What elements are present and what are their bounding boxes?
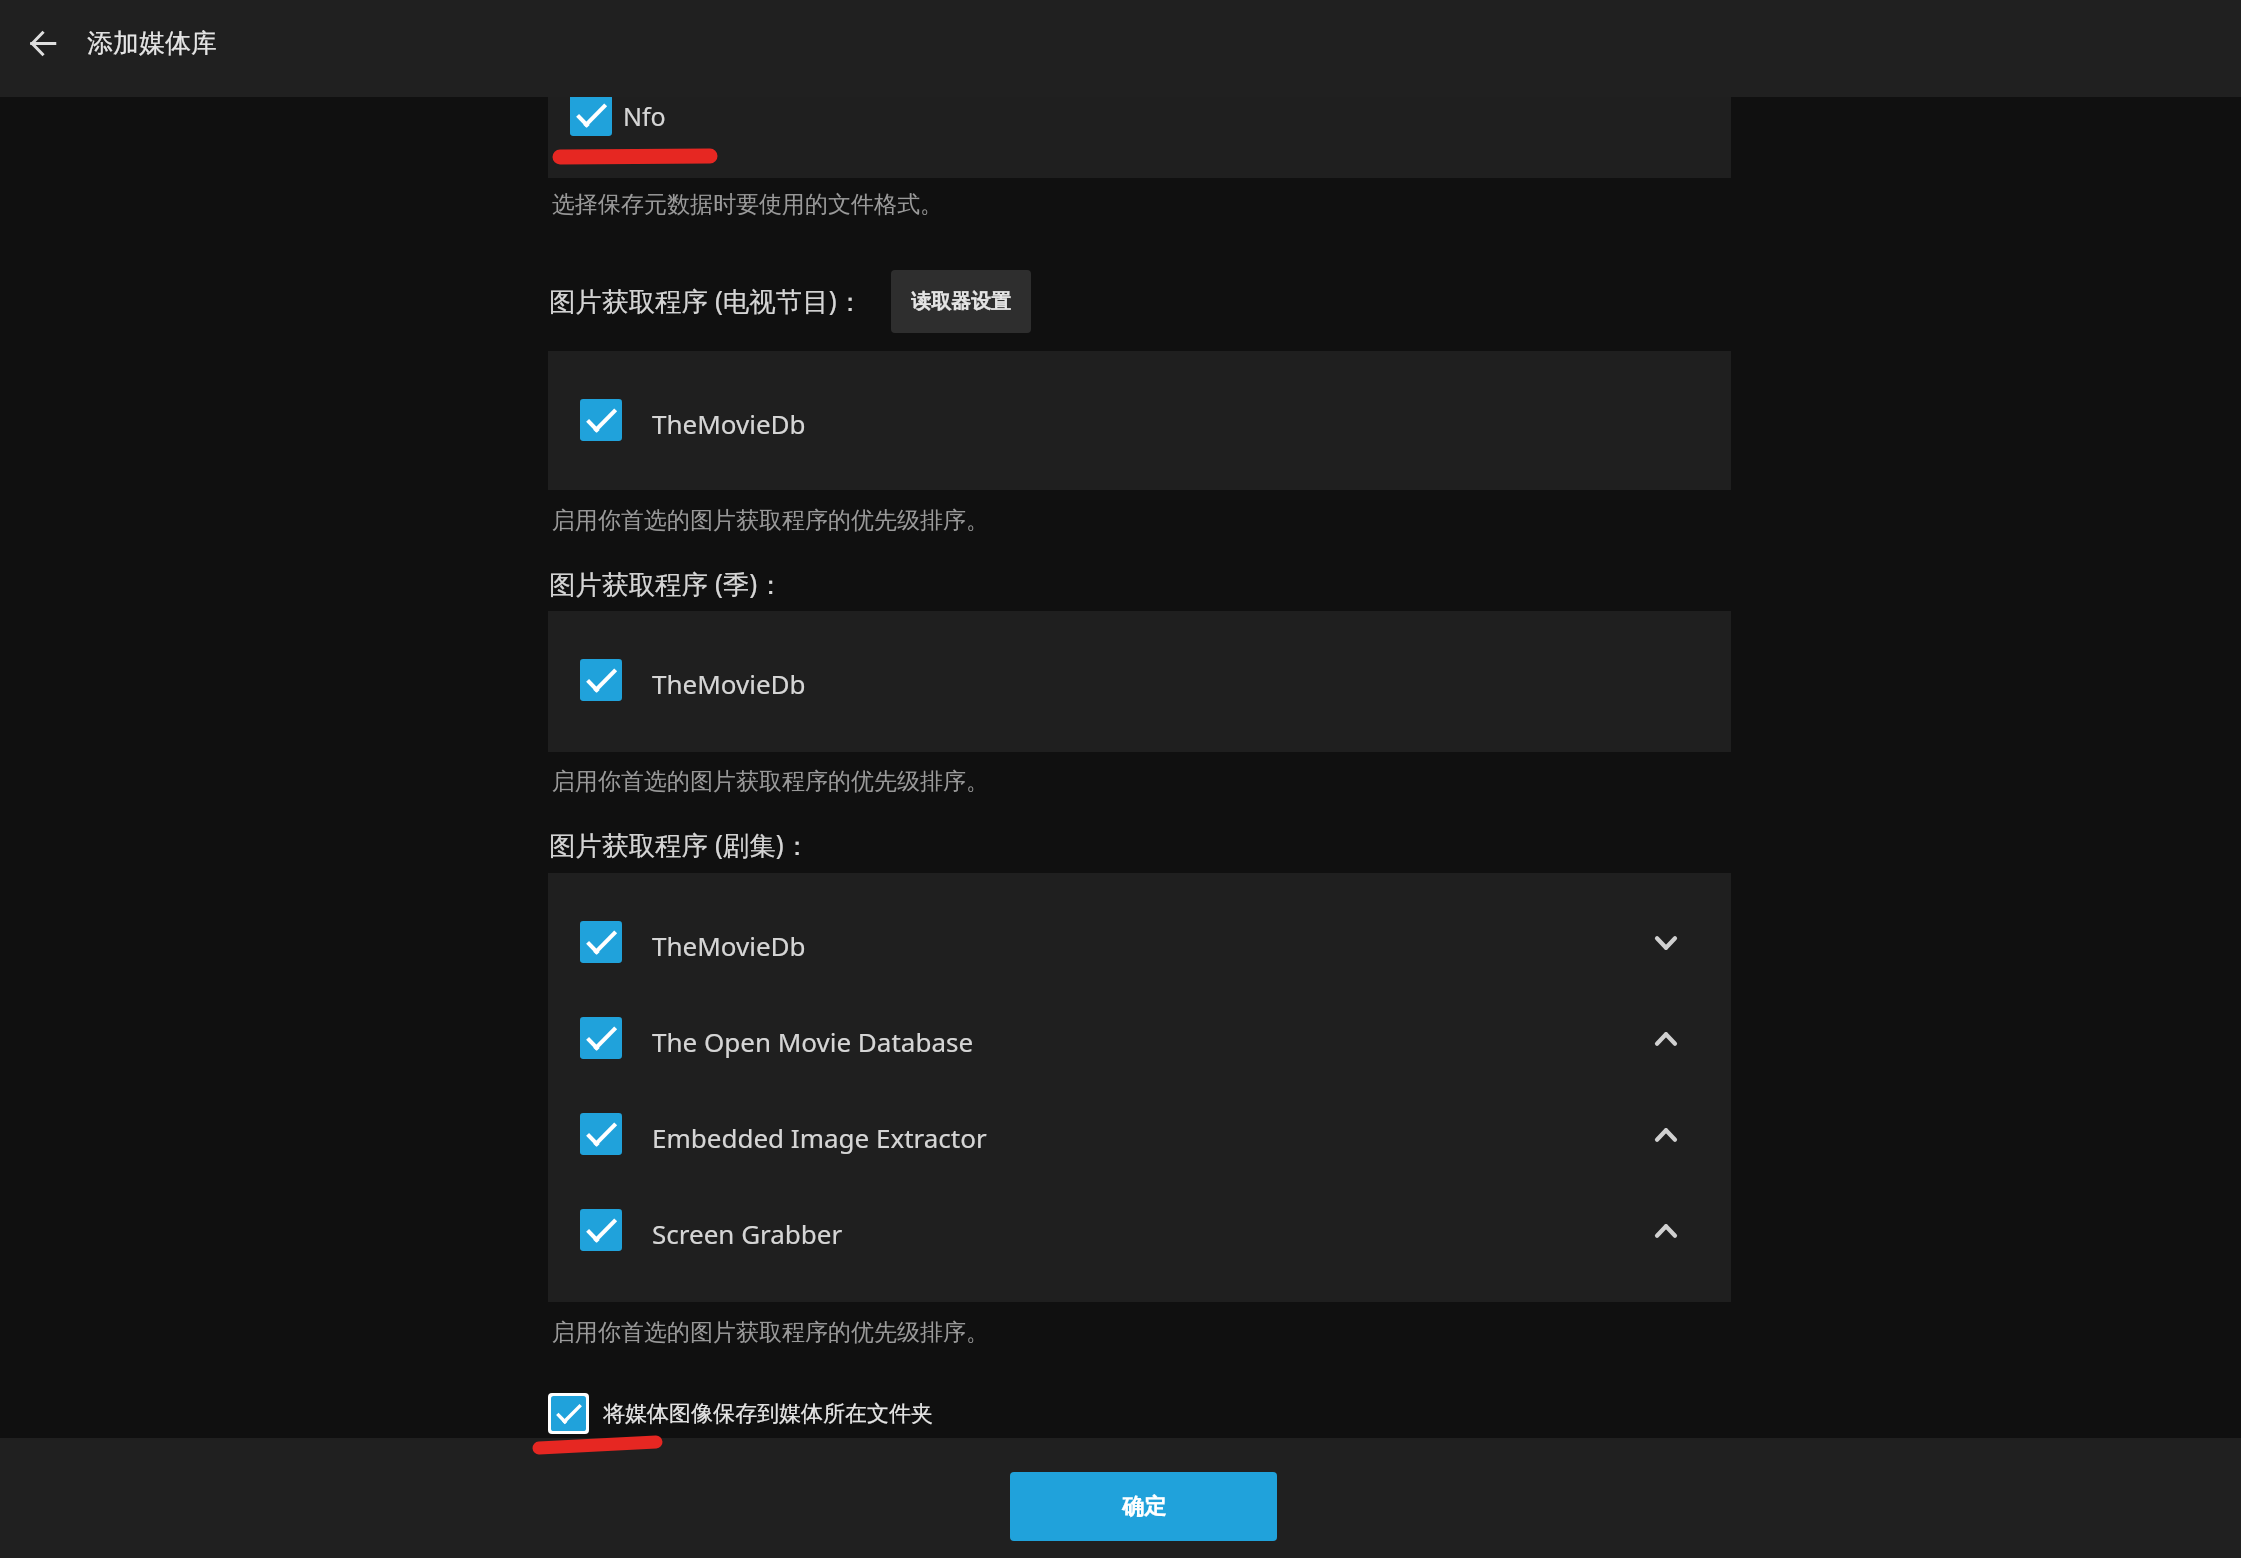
other: Move down [1649,926,1683,960]
button[interactable]: Nfo [548,97,1731,178]
staticText: 启用你首选的图片获取程序的优先级排序。 [552,1318,989,1347]
staticText: 读取器设置 [911,289,1011,314]
staticText: TheMovieDb [652,928,806,963]
button[interactable]: The Open Movie Database [548,991,1731,1087]
staticText: Embedded Image Extractor [652,1120,987,1155]
staticText: TheMovieDb [652,666,806,701]
staticText: 添加媒体库 [87,27,217,60]
button[interactable]: 读取器设置 [891,270,1031,333]
staticText: Nfo [623,99,666,133]
button[interactable]: 将媒体图像保存到媒体所在文件夹 [548,1393,933,1434]
staticText: 图片获取程序 (剧集)： [549,827,811,863]
button[interactable]: TheMovieDb [548,895,1731,991]
staticText: 将媒体图像保存到媒体所在文件夹 [603,1400,933,1428]
staticText: Screen Grabber [652,1216,843,1251]
button[interactable]: Screen Grabber [548,1183,1731,1279]
button[interactable]: Back [15,16,70,71]
staticText: 选择保存元数据时要使用的文件格式。 [552,190,943,219]
button[interactable]: Embedded Image Extractor [548,1087,1731,1183]
other: Move up [1649,1118,1683,1152]
staticText: The Open Movie Database [652,1024,974,1059]
other: Move up [1649,1022,1683,1056]
button[interactable]: 确定 [1010,1472,1277,1541]
other: Move up [1649,1214,1683,1248]
staticText: TheMovieDb [652,406,806,441]
button[interactable]: TheMovieDb [548,633,1731,729]
staticText: 启用你首选的图片获取程序的优先级排序。 [552,506,989,535]
staticText: 确定 [1122,1493,1166,1521]
button[interactable]: TheMovieDb [548,373,1731,469]
staticText: 图片获取程序 (电视节目)： [549,283,864,319]
staticText: 启用你首选的图片获取程序的优先级排序。 [552,767,989,796]
staticText: 图片获取程序 (季)： [549,566,784,602]
